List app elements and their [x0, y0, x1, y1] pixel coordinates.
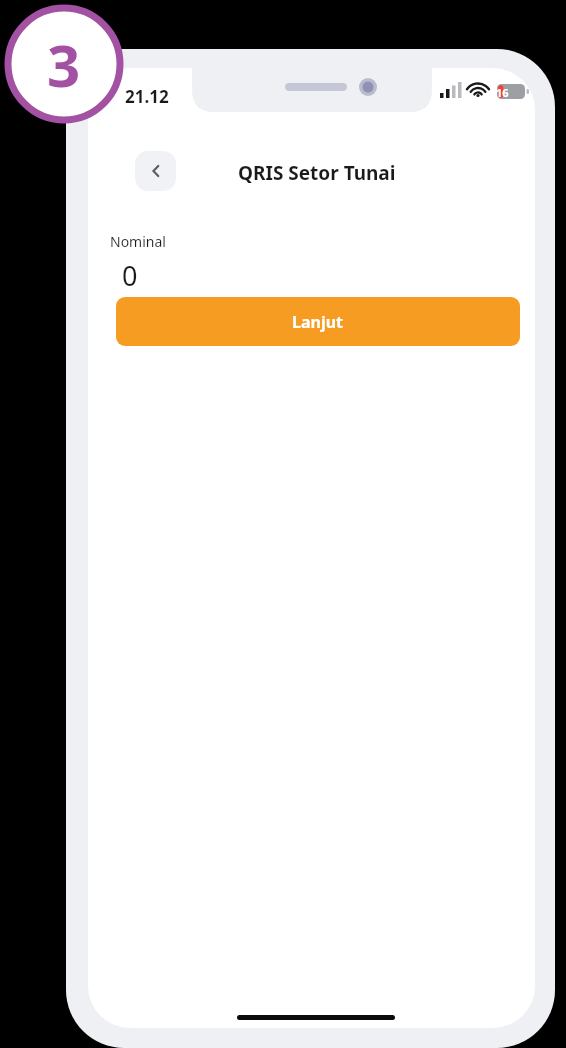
staticText: 0: [122, 257, 138, 294]
button[interactable]: Back: [135, 151, 176, 191]
staticText: 16: [496, 85, 509, 100]
staticText: 21.12: [125, 85, 169, 108]
staticText: Lanjut: [292, 311, 344, 333]
staticText: 3: [47, 25, 81, 104]
staticText: Nominal: [110, 232, 166, 251]
button[interactable]: Lanjut: [116, 297, 520, 346]
staticText: QRIS Setor Tunai: [238, 160, 396, 186]
